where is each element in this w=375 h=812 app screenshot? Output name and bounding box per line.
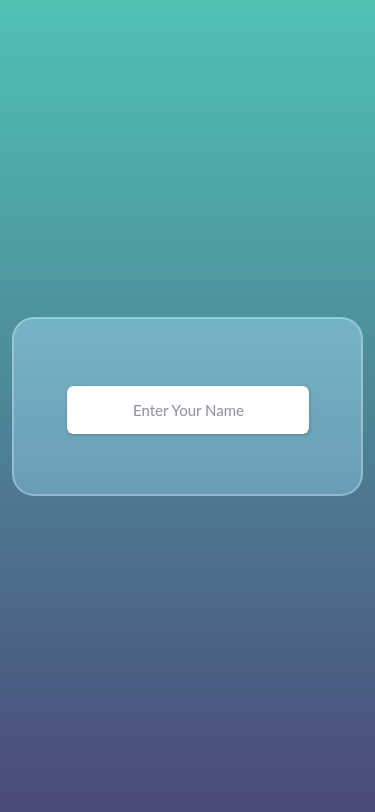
- button[interactable]: Enter Your Name: [67, 386, 309, 434]
- staticText: Enter Your Name: [133, 401, 244, 419]
